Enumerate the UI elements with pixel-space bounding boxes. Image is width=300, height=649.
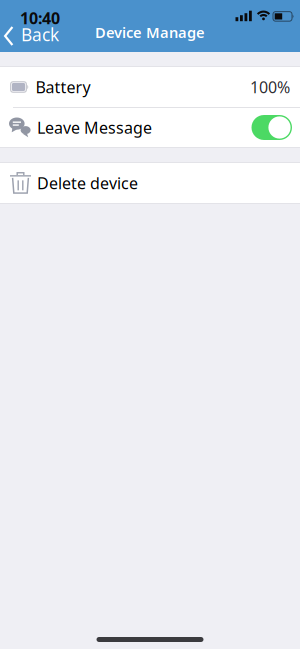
staticText: Delete device xyxy=(37,172,138,194)
staticText: Back xyxy=(21,23,59,46)
staticText: 10:40 xyxy=(20,7,60,29)
button[interactable]: Back xyxy=(0,0,59,47)
button[interactable]: Leave Message xyxy=(251,115,292,140)
staticText: Battery xyxy=(35,76,90,98)
staticText: Leave Message xyxy=(37,117,152,138)
staticText: Device Manage xyxy=(95,22,205,42)
button[interactable]: Delete device xyxy=(0,163,300,203)
staticText: 100% xyxy=(250,76,290,98)
